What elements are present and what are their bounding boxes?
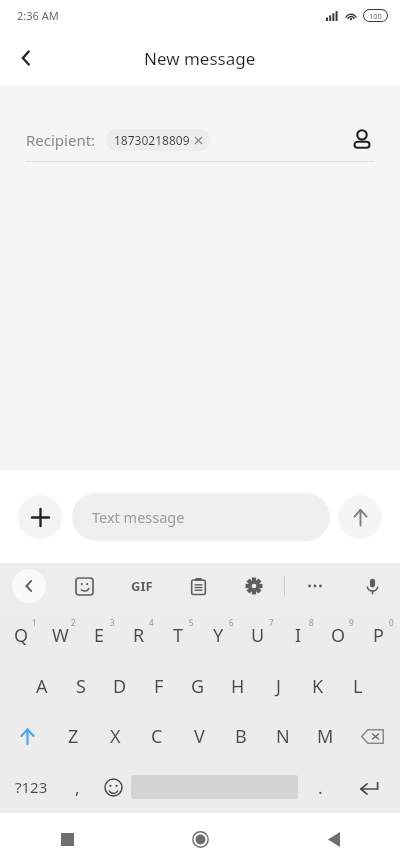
button[interactable]: K (298, 661, 338, 711)
staticText: F (154, 674, 164, 699)
button[interactable]: Y (198, 609, 238, 661)
staticText: 7 (269, 617, 274, 628)
staticText: R (133, 623, 145, 648)
staticText: K (312, 674, 324, 699)
button[interactable]: D (100, 661, 139, 711)
staticText: Y (213, 623, 224, 648)
staticText: N (276, 724, 290, 749)
staticText: 100 (369, 11, 382, 21)
staticText: 2:36 AM (17, 8, 59, 23)
button[interactable]: Stickers (68, 570, 100, 602)
staticText: Q (14, 623, 29, 648)
button[interactable]: W (41, 609, 80, 661)
button[interactable]: B (220, 711, 262, 761)
staticText: J (276, 674, 281, 699)
button[interactable]: G (178, 661, 218, 711)
staticText: 1 (32, 617, 37, 628)
button[interactable]: Backspace (346, 711, 398, 761)
button[interactable]: E (80, 609, 119, 661)
staticText: , (75, 776, 80, 799)
button[interactable]: GIF (126, 572, 158, 600)
staticText: G (191, 674, 205, 699)
staticText: 2 (71, 617, 76, 628)
staticText: E (94, 623, 105, 648)
button[interactable]: Collapse toolbar (12, 569, 46, 603)
button[interactable]: Enter (342, 761, 396, 813)
button[interactable]: Z (53, 711, 94, 761)
staticText: 0 (389, 617, 394, 628)
button[interactable]: C (136, 711, 178, 761)
button[interactable]: P (358, 609, 398, 661)
staticText: Text message (92, 507, 185, 527)
button[interactable]: R (119, 609, 158, 661)
staticText: 3 (110, 617, 115, 628)
button[interactable]: Choose contact (344, 122, 380, 158)
staticText: T (173, 623, 184, 648)
button[interactable]: A (22, 661, 61, 711)
staticText: X (110, 724, 121, 749)
staticText: M (317, 724, 334, 749)
button[interactable]: H (218, 661, 258, 711)
button[interactable]: O (318, 609, 358, 661)
button[interactable]: M (304, 711, 346, 761)
staticText: 18730218809 (114, 132, 190, 148)
button[interactable]: Text message (72, 493, 330, 541)
button[interactable]: ?123 (4, 761, 59, 813)
staticText: New message (144, 47, 256, 70)
button[interactable]: J (258, 661, 298, 711)
staticText: Z (68, 724, 79, 749)
staticText: P (373, 623, 384, 648)
staticText: GIF (131, 577, 153, 595)
button[interactable]: 18730218809 (106, 129, 210, 151)
staticText: 5 (189, 617, 194, 628)
button[interactable]: Recents (0, 813, 134, 866)
button[interactable]: V (178, 711, 220, 761)
button[interactable]: F (139, 661, 178, 711)
button[interactable]: Add attachment (18, 495, 62, 539)
staticText: Recipient: (26, 130, 96, 150)
button[interactable]: Voice input (356, 570, 388, 602)
staticText: W (52, 623, 69, 648)
button[interactable]: Shift (2, 711, 53, 761)
staticText: 8 (309, 617, 314, 628)
button[interactable]: Home (134, 813, 267, 866)
staticText: 4 (149, 617, 154, 628)
button[interactable]: , (59, 761, 95, 813)
staticText: S (76, 674, 86, 699)
staticText: 9 (349, 617, 354, 628)
staticText: . (318, 776, 323, 799)
button[interactable]: . (298, 761, 342, 813)
staticText: 6 (229, 617, 234, 628)
button[interactable]: X (94, 711, 136, 761)
staticText: C (151, 724, 163, 749)
staticText: L (353, 674, 363, 699)
button[interactable]: Clipboard (182, 570, 214, 602)
button[interactable]: Emoji (95, 761, 131, 813)
button[interactable]: Back (0, 32, 52, 84)
staticText: B (235, 724, 247, 749)
button[interactable]: Back (267, 813, 400, 866)
button[interactable]: T (158, 609, 198, 661)
staticText: U (251, 623, 265, 648)
staticText: I (295, 623, 302, 648)
button[interactable]: Q (2, 609, 41, 661)
button[interactable]: Send (338, 495, 382, 539)
staticText: O (331, 623, 346, 648)
button[interactable]: More options (299, 570, 331, 602)
button[interactable]: U (238, 609, 278, 661)
staticText: V (194, 724, 205, 749)
button[interactable]: N (262, 711, 304, 761)
staticText: ?123 (15, 777, 48, 797)
staticText: A (36, 674, 48, 699)
staticText: D (113, 674, 127, 699)
button[interactable]: S (61, 661, 100, 711)
button[interactable]: I (278, 609, 318, 661)
button[interactable]: L (338, 661, 378, 711)
staticText: H (231, 674, 245, 699)
button[interactable]: Settings (238, 570, 270, 602)
